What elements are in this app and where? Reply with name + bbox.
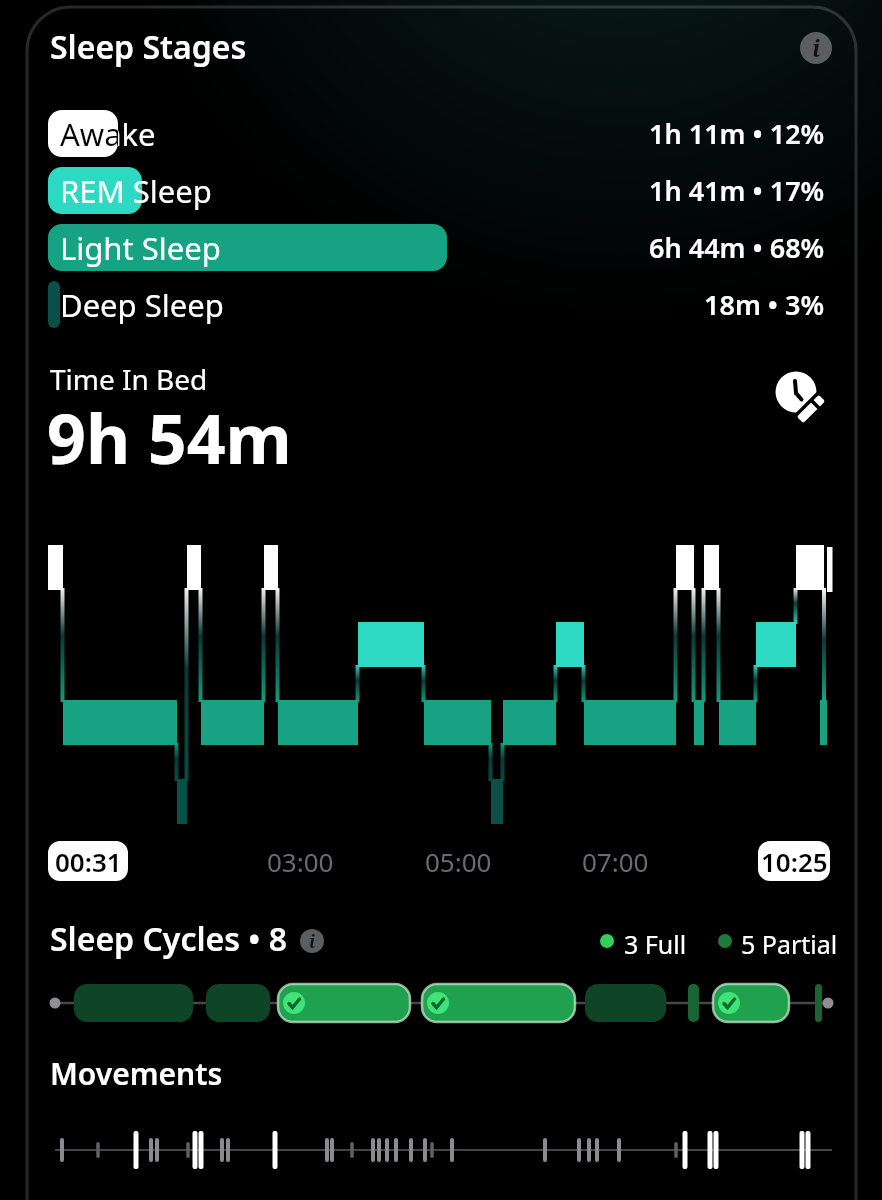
staticText: 03:00 — [267, 844, 334, 879]
button[interactable] — [48, 224, 447, 271]
staticText: 10:25 — [761, 844, 828, 879]
staticText: 3 Full — [624, 927, 687, 961]
button[interactable]: 10:25 — [758, 841, 830, 881]
staticText: 9h 54m — [47, 391, 292, 484]
staticText: Time In Bed — [50, 360, 208, 398]
staticText: Awake — [60, 113, 118, 155]
staticText: 07:00 — [582, 844, 649, 879]
button[interactable]: i — [300, 929, 324, 953]
staticText: Deep Sleep — [60, 284, 224, 326]
staticText: Light Sleep — [60, 227, 221, 269]
button[interactable] — [770, 368, 834, 432]
staticText: 1h 41m • 17% — [649, 172, 825, 209]
staticText: Movements — [50, 1053, 223, 1094]
staticText: 5 Partial — [741, 927, 838, 961]
button[interactable] — [0, 960, 882, 1050]
button[interactable] — [48, 167, 142, 214]
staticText: REM Sleep — [60, 170, 212, 212]
staticText: 05:00 — [425, 844, 492, 879]
button[interactable] — [48, 110, 118, 157]
staticText: 18m • 3% — [704, 286, 825, 323]
staticText: 00:31 — [55, 844, 122, 879]
staticText: 6h 44m • 68% — [649, 229, 825, 266]
button[interactable]: 00:31 — [48, 841, 128, 881]
staticText: i — [812, 32, 821, 64]
button[interactable]: i — [800, 32, 832, 64]
staticText: Awake — [60, 113, 156, 155]
staticText: Sleep Cycles • 8 — [50, 917, 287, 961]
staticText: i — [309, 929, 316, 953]
staticText: Sleep Stages — [50, 25, 247, 69]
staticText: 1h 11m • 12% — [649, 115, 825, 152]
button[interactable] — [48, 281, 60, 328]
